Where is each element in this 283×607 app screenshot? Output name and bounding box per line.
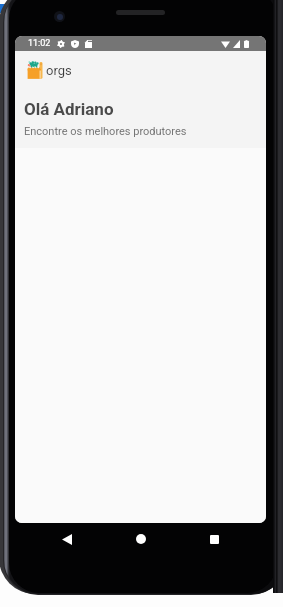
staticText: 11:02 (28, 38, 51, 49)
button[interactable]: Back (50, 526, 84, 552)
staticText: Encontre os melhores produtores (24, 125, 187, 138)
button[interactable]: orgs (20, 57, 72, 84)
staticText: orgs (46, 63, 72, 78)
staticText: Olá Adriano (24, 99, 114, 119)
button[interactable]: Home (124, 526, 158, 552)
button[interactable]: Recent apps (197, 526, 231, 552)
